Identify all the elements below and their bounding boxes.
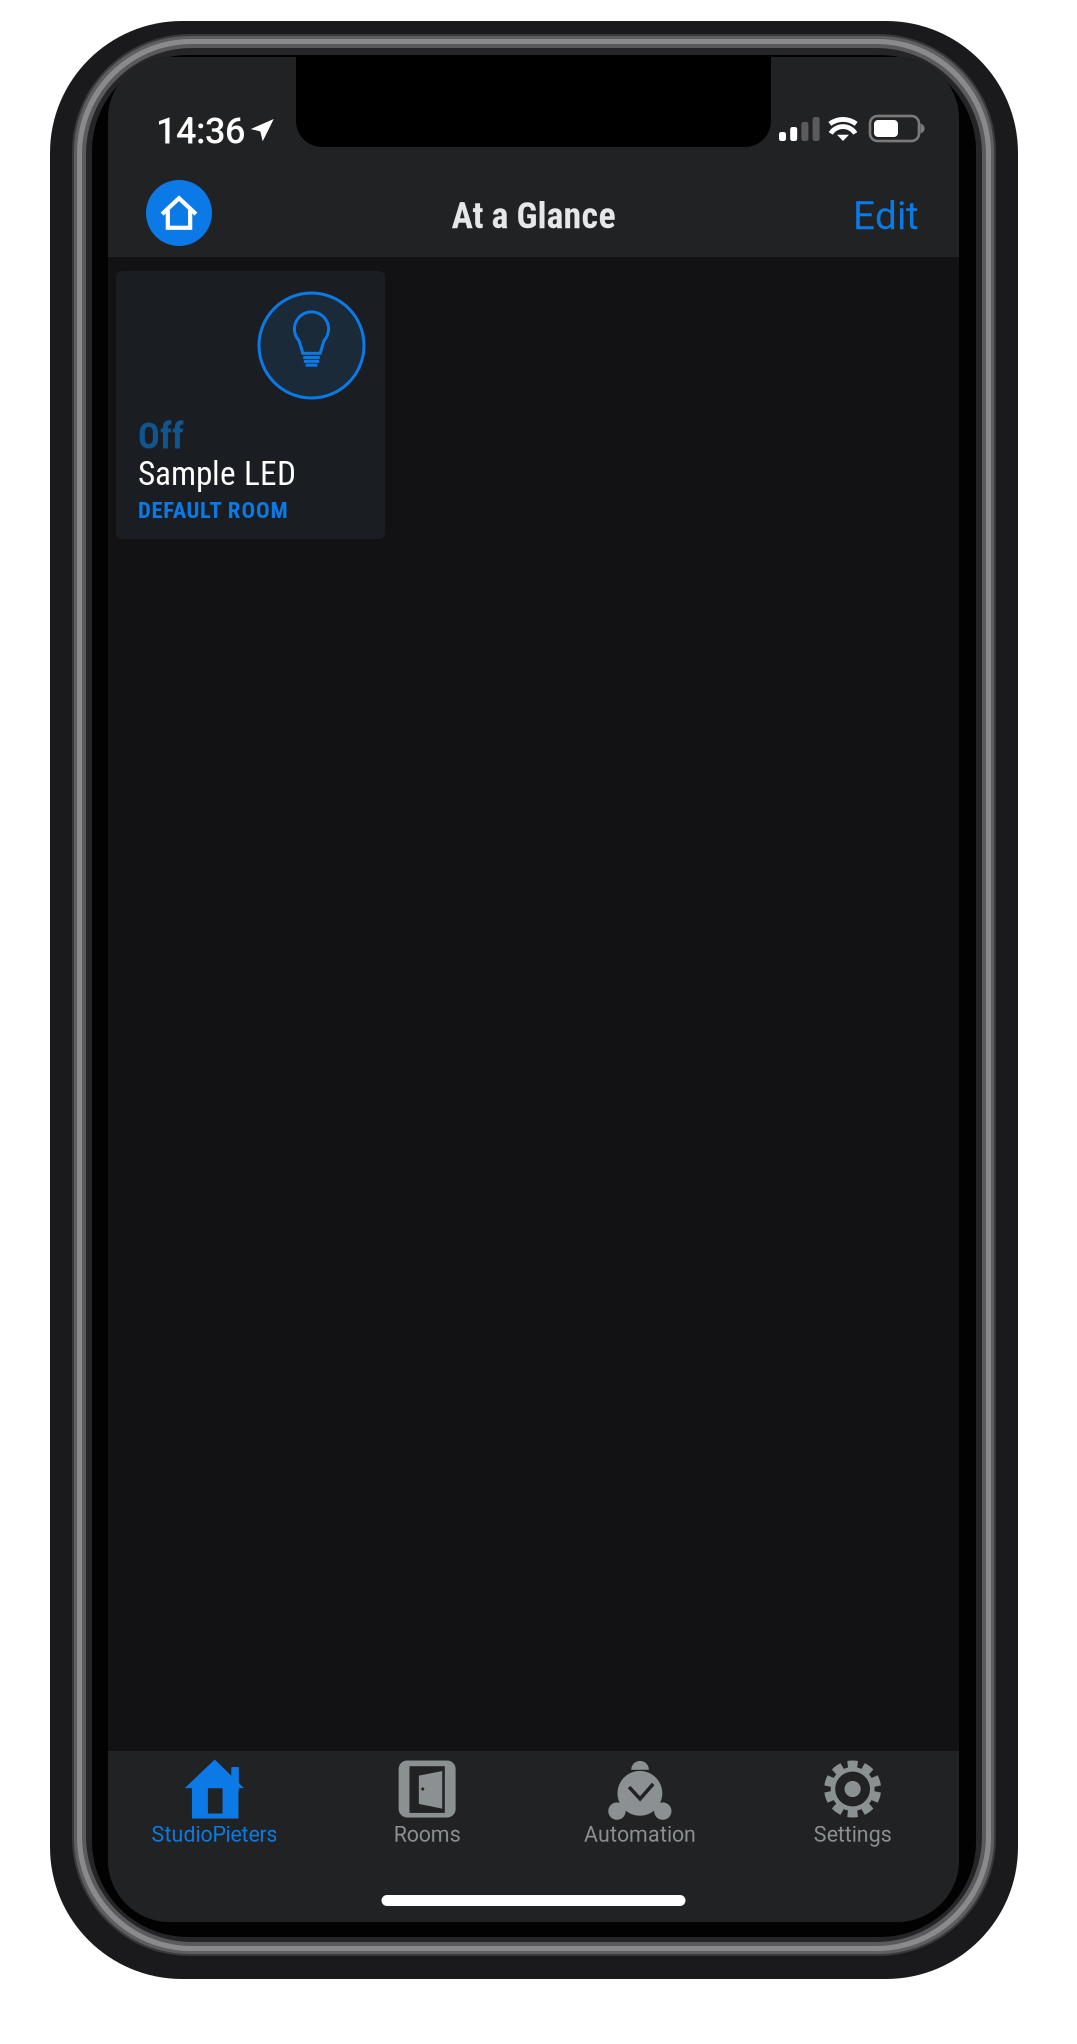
staticText: StudioPieters <box>151 1822 277 1847</box>
staticText: Edit <box>853 193 919 239</box>
staticText: Off <box>138 415 184 457</box>
staticText: Automation <box>584 1822 696 1847</box>
button[interactable]: Automation <box>533 1759 746 1871</box>
staticText: Rooms <box>394 1822 461 1847</box>
button[interactable]: Off <box>116 271 385 539</box>
button[interactable]: Home <box>146 180 212 246</box>
button[interactable]: Edit <box>833 183 919 249</box>
staticText: 14:36 <box>156 110 245 152</box>
staticText: Sample LED <box>138 454 296 493</box>
staticText: At a Glance <box>451 195 615 237</box>
button[interactable]: Rooms <box>321 1759 534 1871</box>
button[interactable]: Settings <box>746 1759 959 1871</box>
staticText: Settings <box>814 1822 892 1847</box>
button[interactable]: StudioPieters <box>108 1759 321 1871</box>
staticText: DEFAULT ROOM <box>138 497 288 524</box>
